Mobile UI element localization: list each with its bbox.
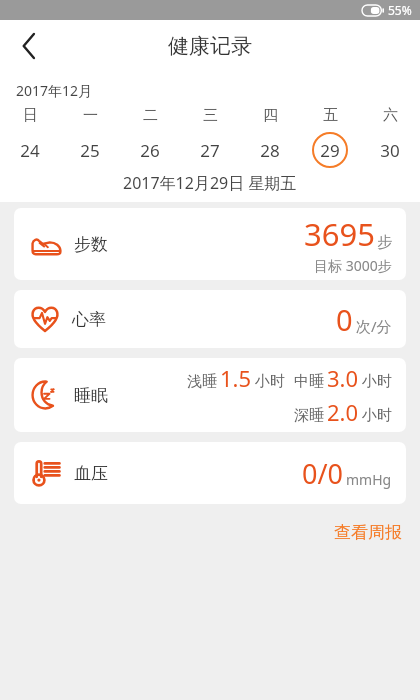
staticText: 睡眠	[74, 385, 108, 406]
staticText: 26	[140, 139, 160, 162]
staticText: 心率	[72, 309, 106, 330]
staticText: 一	[83, 106, 98, 125]
staticText: 步	[377, 233, 392, 252]
staticText: 四	[263, 106, 278, 125]
staticText: 血压	[74, 463, 108, 484]
staticText: 小时	[255, 372, 285, 391]
button[interactable]: 30	[360, 131, 420, 169]
staticText: 浅睡	[187, 372, 217, 391]
button[interactable]: 29	[300, 131, 360, 169]
button[interactable]: 26	[120, 131, 180, 169]
staticText: 次/分	[356, 316, 392, 336]
button[interactable]: 28	[240, 131, 300, 169]
staticText: 2.0	[327, 397, 359, 427]
staticText: 24	[20, 139, 40, 162]
staticText: 五	[323, 106, 338, 125]
staticText: 27	[200, 139, 220, 162]
button[interactable]: 血压	[14, 442, 406, 504]
button[interactable]: 查看周报	[330, 518, 406, 547]
button[interactable]: 24	[0, 131, 60, 169]
staticText: 2017年12月29日 星期五	[123, 172, 297, 194]
staticText: 28	[260, 139, 280, 162]
staticText: 健康记录	[168, 33, 252, 59]
staticText: 步数	[74, 234, 108, 255]
staticText: 六	[383, 106, 398, 125]
staticText: 二	[143, 106, 158, 125]
staticText: 深睡	[294, 406, 324, 425]
staticText: 0	[336, 300, 353, 339]
button[interactable]: 步数	[14, 208, 406, 280]
staticText: 3.0	[327, 363, 359, 393]
staticText: 小时	[362, 372, 392, 391]
staticText: 2017年12月	[16, 81, 93, 100]
staticText: mmHg	[346, 470, 392, 489]
button[interactable]: 心率	[14, 290, 406, 348]
staticText: 55%	[388, 2, 412, 18]
staticText: 小时	[362, 406, 392, 425]
staticText: 25	[80, 139, 100, 162]
staticText: 29	[320, 139, 340, 162]
button[interactable]: 睡眠	[14, 358, 406, 432]
staticText: 30	[380, 139, 400, 162]
staticText: 0/0	[302, 455, 343, 492]
staticText: 三	[203, 106, 218, 125]
staticText: 目标 3000步	[314, 256, 392, 275]
button[interactable]: Back	[0, 20, 58, 72]
staticText: 中睡	[294, 372, 324, 391]
staticText: 3695	[304, 213, 375, 255]
staticText: 1.5	[220, 363, 252, 393]
staticText: 查看周报	[334, 522, 402, 543]
button[interactable]: 27	[180, 131, 240, 169]
button[interactable]: 25	[60, 131, 120, 169]
staticText: 日	[23, 106, 38, 125]
